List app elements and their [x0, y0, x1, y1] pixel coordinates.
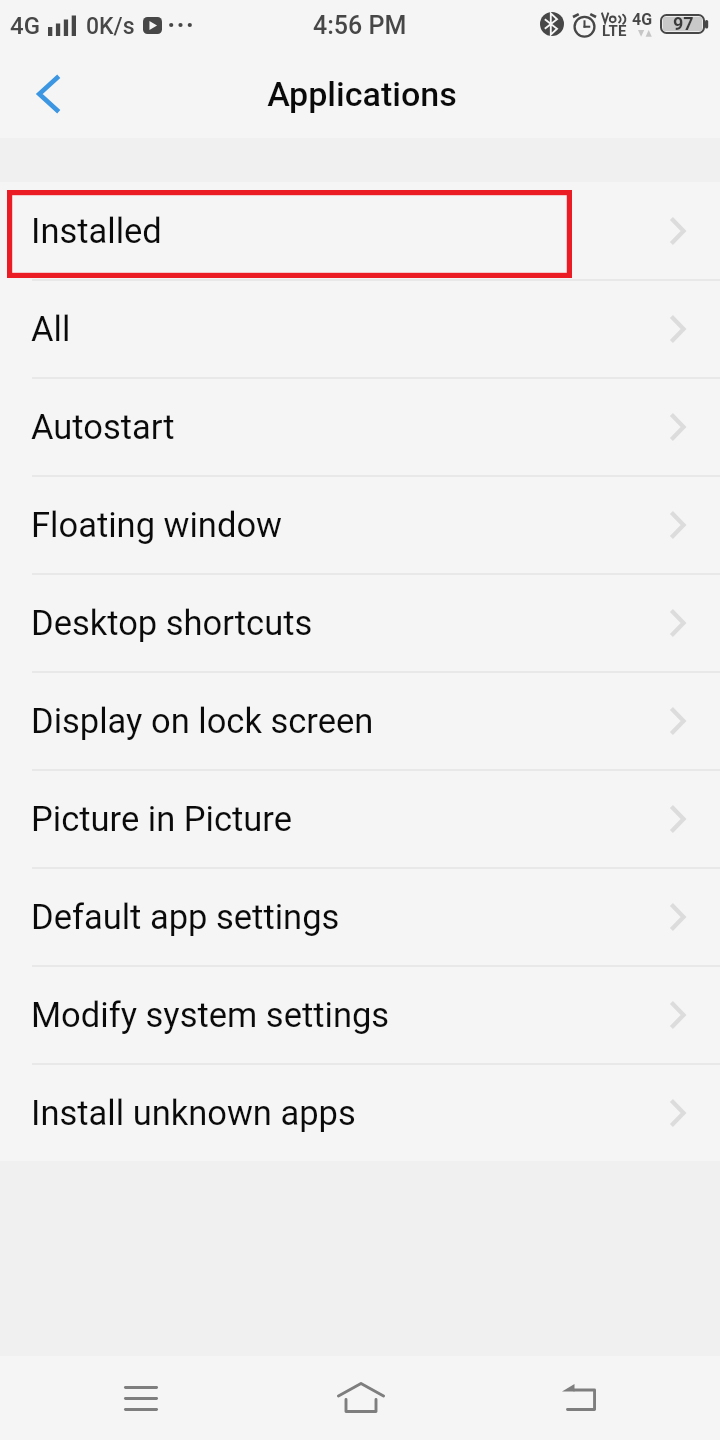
staticText: Desktop shortcuts [31, 603, 313, 643]
staticText: Picture in Picture [31, 799, 292, 839]
staticText: Display on lock screen [31, 701, 374, 741]
button[interactable]: Desktop shortcuts [0, 574, 720, 672]
button[interactable]: Back [519, 1356, 639, 1440]
staticText: 4G [632, 10, 653, 29]
button[interactable]: Installed [0, 182, 720, 280]
staticText: 97 [673, 13, 694, 34]
staticText: Autostart [31, 407, 175, 447]
button[interactable]: Picture in Picture [0, 770, 720, 868]
staticText: 4G [10, 12, 40, 40]
button[interactable]: Home [300, 1356, 420, 1440]
button[interactable]: Autostart [0, 378, 720, 476]
button[interactable]: All [0, 280, 720, 378]
staticText: Applications [267, 74, 457, 114]
staticText: All [31, 309, 71, 349]
staticText: Modify system settings [31, 995, 390, 1035]
button[interactable]: Modify system settings [0, 966, 720, 1064]
staticText: 4:56 PM [313, 11, 407, 40]
button[interactable]: Install unknown apps [0, 1064, 720, 1161]
button[interactable]: Back [0, 50, 96, 138]
staticText: Installed [31, 211, 162, 251]
staticText: Install unknown apps [31, 1093, 356, 1133]
staticText: 0K/s [86, 13, 135, 40]
staticText: Default app settings [31, 897, 340, 937]
button[interactable]: Display on lock screen [0, 672, 720, 770]
button[interactable]: Recent apps [80, 1356, 200, 1440]
staticText: Floating window [31, 505, 282, 545]
staticText: LTE [602, 22, 627, 40]
button[interactable]: Floating window [0, 476, 720, 574]
button[interactable]: Default app settings [0, 868, 720, 966]
